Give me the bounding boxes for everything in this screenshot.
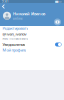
staticText: Уведомления <box>2 42 25 47</box>
staticText: online <box>13 17 23 20</box>
button[interactable]: Мой профиль <box>0 48 64 52</box>
button[interactable]: @ivan_ivanov <box>0 31 64 41</box>
staticText: 9:41 <box>2 0 9 3</box>
staticText: @ivan_ivanov <box>2 31 26 37</box>
button[interactable]: Change photo <box>54 18 61 25</box>
button[interactable]: Редактировать <box>0 26 64 31</box>
staticText: ▮▮▮ ▭ <box>55 0 62 3</box>
button[interactable]: Back <box>0 3 7 10</box>
staticText: Мой профиль <box>2 47 26 53</box>
button[interactable]: Уведомления <box>0 41 64 48</box>
staticText: Редактировать <box>2 26 28 31</box>
staticText: Имя пользователя <box>2 37 28 40</box>
staticText: Николай Иванов <box>13 11 45 16</box>
